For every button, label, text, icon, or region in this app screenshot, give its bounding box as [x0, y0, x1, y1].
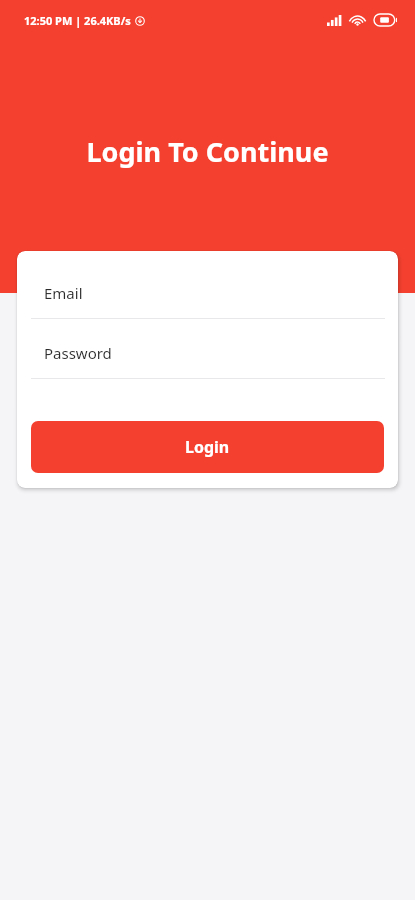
- button[interactable]: Login: [31, 421, 384, 473]
- staticText: 12:50 PM | 26.4KB/s: [24, 13, 131, 28]
- staticText: Password: [44, 343, 112, 363]
- staticText: Login To Continue: [0, 133, 415, 170]
- staticText: Login: [185, 436, 230, 458]
- staticText: Email: [44, 283, 83, 303]
- button[interactable]: Password: [17, 328, 398, 378]
- button[interactable]: Email: [17, 268, 398, 318]
